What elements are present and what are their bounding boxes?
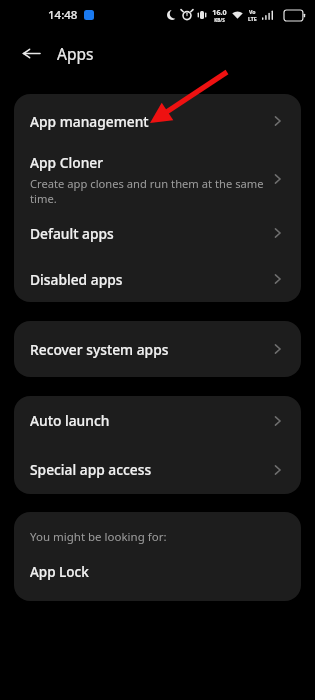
staticText: App Cloner [30, 153, 104, 172]
button[interactable]: Recover system apps [14, 321, 301, 377]
button[interactable]: Auto launch [14, 396, 301, 445]
staticText: Auto launch [30, 411, 110, 430]
staticText: 14:48 [48, 7, 78, 23]
staticText: Apps [57, 43, 94, 64]
staticText: App management [30, 112, 149, 131]
button[interactable]: Special app access [14, 445, 301, 494]
staticText: 16.0 [212, 7, 227, 17]
staticText: You might be looking for: [30, 529, 167, 545]
staticText: Vo [249, 8, 256, 15]
staticText: Create app clones and run them at the sa… [30, 176, 271, 206]
button[interactable]: App Cloner [14, 148, 301, 210]
button[interactable]: App Lock [30, 563, 285, 581]
staticText: Special app access [30, 460, 152, 479]
button[interactable]: Disabled apps [14, 256, 301, 302]
staticText: App Lock [30, 563, 89, 581]
staticText: KB/S [214, 17, 225, 23]
staticText: Recover system apps [30, 340, 169, 359]
button[interactable]: Default apps [14, 210, 301, 256]
staticText: Default apps [30, 224, 114, 243]
button[interactable]: Back [14, 36, 48, 70]
staticText: LTE [248, 15, 257, 22]
staticText: Disabled apps [30, 270, 123, 289]
button[interactable]: App management [14, 94, 301, 148]
